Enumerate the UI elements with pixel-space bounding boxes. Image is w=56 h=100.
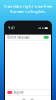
staticText: Translate right now from — [3, 3, 52, 9]
staticText: English — [14, 91, 24, 94]
staticText: 9:41 — [8, 26, 15, 30]
staticText: Korean to English. — [10, 9, 46, 14]
staticText: Detect language — [7, 36, 30, 39]
